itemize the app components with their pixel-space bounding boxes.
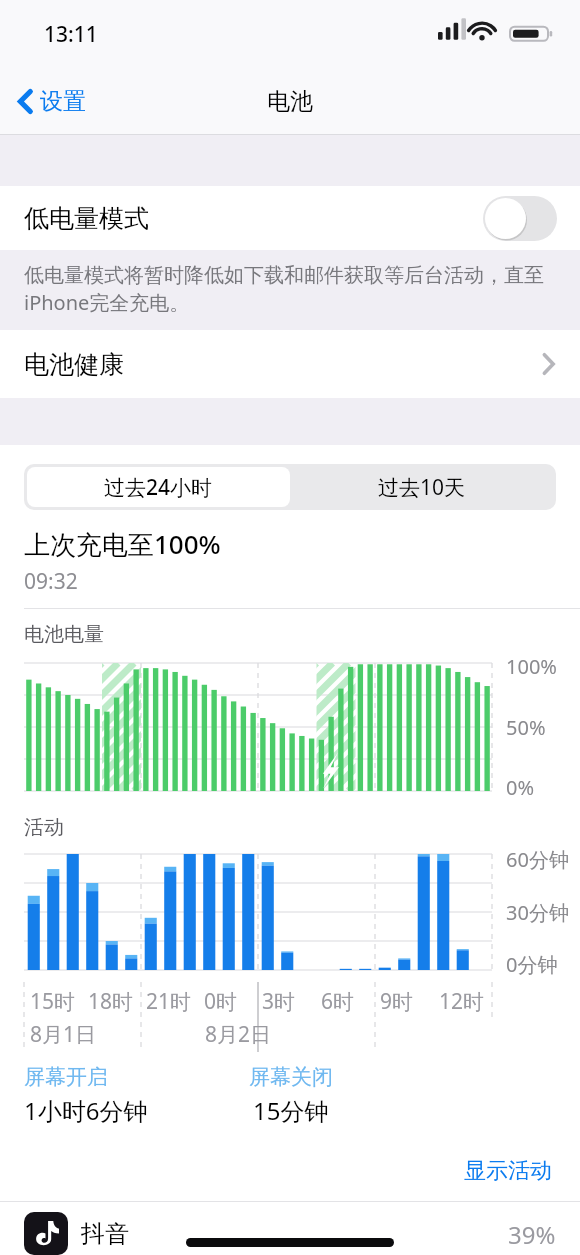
button[interactable]: 低电量模式 <box>0 186 580 250</box>
staticText: 60分钟 <box>506 846 569 873</box>
button[interactable]: 过去10天 <box>290 467 553 507</box>
staticText: 12时 <box>439 987 485 1016</box>
staticText: 电池 <box>267 87 313 116</box>
staticText: 电池健康 <box>24 349 124 380</box>
staticText: 0时 <box>204 987 238 1016</box>
staticText: 30分钟 <box>506 899 569 926</box>
button[interactable]: 电池健康 <box>0 330 580 398</box>
staticText: 8月2日 <box>205 1020 272 1049</box>
staticText: 低电量模式将暂时降低如下载和邮件获取等后台活动，直至iPhone完全充电。 <box>24 263 550 316</box>
staticText: 显示活动 <box>464 1157 552 1185</box>
staticText: 50% <box>506 714 546 741</box>
staticText: 15时 <box>30 987 76 1016</box>
staticText: 过去24小时 <box>104 473 213 502</box>
staticText: 过去10天 <box>378 473 466 502</box>
staticText: 21时 <box>146 987 192 1016</box>
staticText: 屏幕开启 <box>24 1064 108 1090</box>
staticText: 18时 <box>88 987 134 1016</box>
button[interactable]: 设置 <box>10 81 94 122</box>
staticText: 抖音 <box>81 1219 129 1249</box>
staticText: 100% <box>506 653 557 680</box>
staticText: 设置 <box>40 87 86 116</box>
button[interactable]: 抖音 <box>0 1202 580 1255</box>
staticText: 0% <box>506 774 535 801</box>
staticText: 39% <box>508 1218 556 1251</box>
staticText: 活动 <box>24 815 64 840</box>
staticText: 3时 <box>262 987 296 1016</box>
staticText: 上次充电至100% <box>24 526 221 562</box>
button[interactable]: 低电量模式开关 <box>483 196 557 241</box>
staticText: 1小时6分钟 <box>24 1094 148 1127</box>
staticText: 0分钟 <box>506 951 558 978</box>
button[interactable]: 过去24小时 <box>27 467 290 507</box>
staticText: 屏幕关闭 <box>249 1064 333 1090</box>
staticText: 电池电量 <box>24 622 104 647</box>
staticText: 9时 <box>380 987 414 1016</box>
staticText: 低电量模式 <box>24 203 149 234</box>
staticText: 15分钟 <box>253 1094 329 1127</box>
staticText: 13:11 <box>44 20 98 49</box>
button[interactable]: 显示活动 <box>460 1153 556 1189</box>
staticText: 09:32 <box>24 567 78 596</box>
staticText: 6时 <box>321 987 355 1016</box>
staticText: 8月1日 <box>30 1020 97 1049</box>
